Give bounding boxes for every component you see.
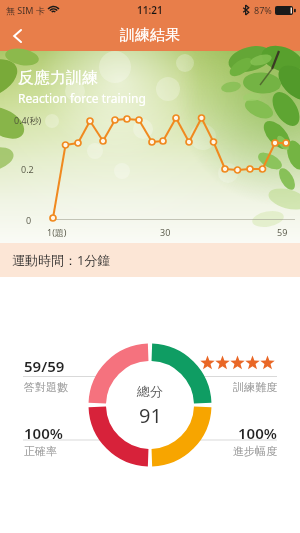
staticText: 0.2 [21, 163, 34, 175]
staticText: 運動時間：1分鐘 [12, 251, 111, 269]
staticText: 反應力訓練 [18, 68, 98, 88]
button[interactable] [0, 20, 34, 51]
staticText: 正確率 [24, 444, 57, 458]
staticText: 91 [139, 402, 162, 429]
staticText: 訓練難度 [233, 380, 277, 394]
staticText: 0.4(秒) [14, 114, 42, 126]
staticText: 100% [238, 423, 277, 443]
staticText: 11:21 [137, 3, 163, 17]
staticText: 100% [24, 423, 63, 443]
staticText: 訓練結果 [120, 26, 180, 45]
staticText: 0 [26, 214, 32, 226]
staticText: 無 SIM 卡 [6, 4, 45, 16]
staticText: 59 [277, 226, 288, 238]
staticText: 進步幅度 [233, 444, 277, 458]
staticText: 87% [254, 4, 272, 16]
staticText: Reaction force training [18, 90, 146, 106]
staticText: 答對題數 [24, 380, 68, 394]
button[interactable]: 運動時間：1分鐘 [0, 243, 300, 277]
staticText: 30 [160, 226, 171, 238]
staticText: 1(題) [47, 226, 67, 238]
staticText: 59/59 [24, 356, 65, 376]
staticText: 總分 [137, 383, 163, 399]
